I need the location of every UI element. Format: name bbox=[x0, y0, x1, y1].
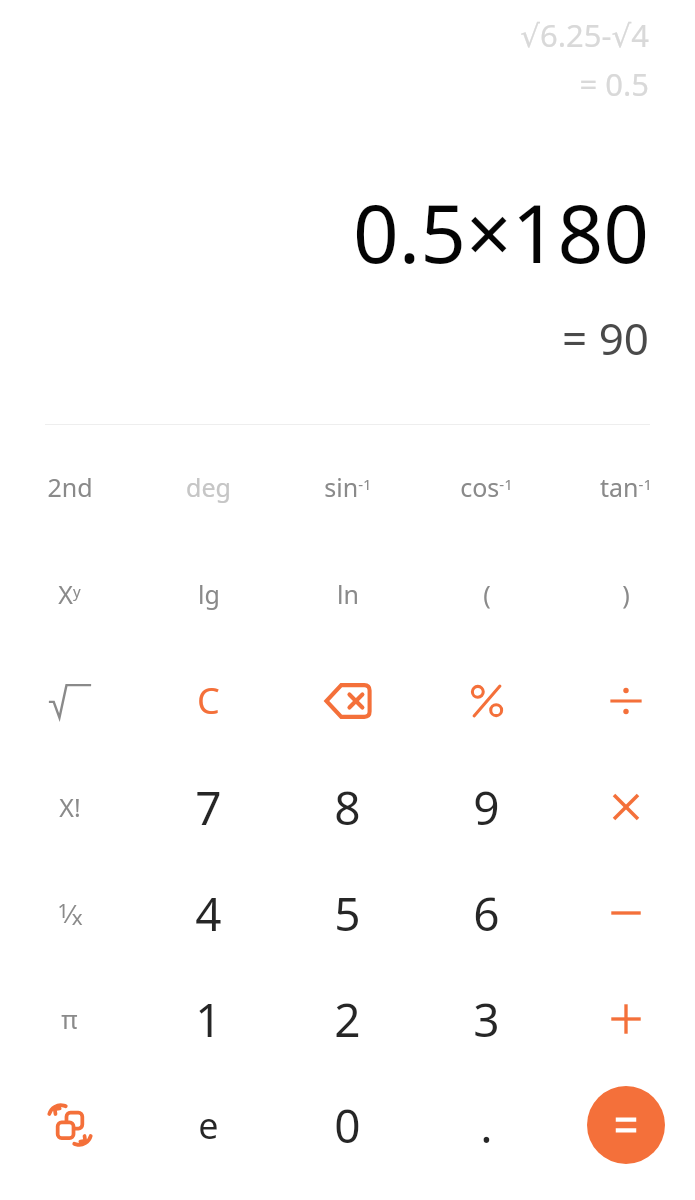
staticText: ( bbox=[483, 577, 491, 611]
button[interactable]: tan-1 bbox=[556, 433, 695, 540]
staticText: cos-1 bbox=[460, 470, 513, 504]
button[interactable]: lg bbox=[139, 540, 278, 647]
staticText: Xy bbox=[58, 577, 81, 611]
button[interactable]: 1⁄x bbox=[0, 860, 139, 966]
staticText: ln bbox=[337, 577, 359, 611]
staticText: 3 bbox=[473, 988, 500, 1051]
button[interactable]: 7 bbox=[139, 754, 278, 860]
button[interactable]: Divide bbox=[556, 647, 695, 754]
button[interactable]: Unit converter bbox=[0, 1072, 139, 1178]
button[interactable]: . bbox=[417, 1072, 556, 1178]
staticText: 1 bbox=[195, 988, 222, 1051]
staticText: 7 bbox=[195, 776, 222, 839]
staticText: = 0.5 bbox=[24, 63, 649, 105]
button[interactable]: Multiply bbox=[556, 754, 695, 860]
button[interactable]: 3 bbox=[417, 966, 556, 1072]
staticText: ) bbox=[622, 577, 630, 611]
button[interactable]: 4 bbox=[139, 860, 278, 966]
button[interactable]: Plus bbox=[556, 966, 695, 1072]
button[interactable]: C bbox=[139, 647, 278, 754]
staticText: 2 bbox=[334, 988, 361, 1051]
button[interactable]: deg bbox=[139, 433, 278, 540]
button[interactable]: X! bbox=[0, 754, 139, 860]
button[interactable]: e bbox=[139, 1072, 278, 1178]
button[interactable]: ( bbox=[417, 540, 556, 647]
staticText: 1⁄x bbox=[57, 896, 83, 931]
staticText: 8 bbox=[334, 776, 361, 839]
button[interactable]: ln bbox=[278, 540, 417, 647]
staticText: √6.25-√4 bbox=[24, 14, 649, 56]
staticText: 0.5×180 bbox=[24, 177, 649, 286]
staticText: 4 bbox=[195, 882, 222, 945]
button[interactable]: 2nd bbox=[0, 433, 139, 540]
button[interactable]: 8 bbox=[278, 754, 417, 860]
staticText: X! bbox=[59, 790, 81, 824]
staticText: 6 bbox=[473, 882, 500, 945]
button[interactable]: Xy bbox=[0, 540, 139, 647]
staticText: = 90 bbox=[24, 308, 649, 368]
staticText: 9 bbox=[473, 776, 500, 839]
staticText: sin-1 bbox=[324, 470, 372, 504]
staticText: deg bbox=[186, 470, 231, 504]
staticText: 0 bbox=[334, 1094, 361, 1157]
button[interactable]: 5 bbox=[278, 860, 417, 966]
button[interactable]: Backspace bbox=[278, 647, 417, 754]
staticText: C bbox=[197, 676, 220, 725]
button[interactable]: π bbox=[0, 966, 139, 1072]
button[interactable]: ) bbox=[556, 540, 695, 647]
button[interactable]: 2 bbox=[278, 966, 417, 1072]
button[interactable]: 6 bbox=[417, 860, 556, 966]
button[interactable]: Square root bbox=[0, 647, 139, 754]
staticText: tan-1 bbox=[600, 470, 652, 504]
staticText: π bbox=[61, 1002, 78, 1036]
staticText: . bbox=[480, 1094, 493, 1157]
staticText: 2nd bbox=[47, 470, 93, 504]
staticText: 5 bbox=[334, 882, 361, 945]
button[interactable]: 0 bbox=[278, 1072, 417, 1178]
button[interactable]: Equals bbox=[587, 1086, 665, 1164]
button[interactable]: Percent bbox=[417, 647, 556, 754]
staticText: lg bbox=[198, 577, 220, 611]
button[interactable]: 1 bbox=[139, 966, 278, 1072]
button[interactable]: cos-1 bbox=[417, 433, 556, 540]
button[interactable]: 9 bbox=[417, 754, 556, 860]
button[interactable]: sin-1 bbox=[278, 433, 417, 540]
button[interactable]: Minus bbox=[556, 860, 695, 966]
staticText: e bbox=[198, 1101, 219, 1150]
